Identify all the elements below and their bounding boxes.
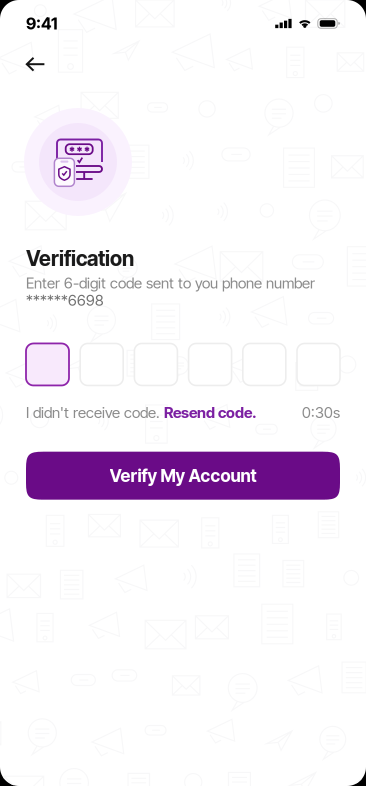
staticText: 0:30s bbox=[302, 403, 340, 422]
button[interactable]: Verify My Account bbox=[26, 452, 340, 500]
staticText: Verification bbox=[26, 246, 134, 271]
staticText: Resend code. bbox=[164, 403, 257, 422]
button[interactable]: Resend code. bbox=[164, 403, 257, 422]
staticText: ******6698 bbox=[26, 291, 104, 309]
staticText: Enter 6-digit code sent to you phone num… bbox=[26, 274, 315, 292]
staticText: Verify My Account bbox=[109, 465, 256, 486]
staticText: 9:41 bbox=[26, 14, 57, 33]
button[interactable]: Back bbox=[0, 47, 59, 78]
staticText: I didn't receive code. bbox=[26, 403, 164, 422]
